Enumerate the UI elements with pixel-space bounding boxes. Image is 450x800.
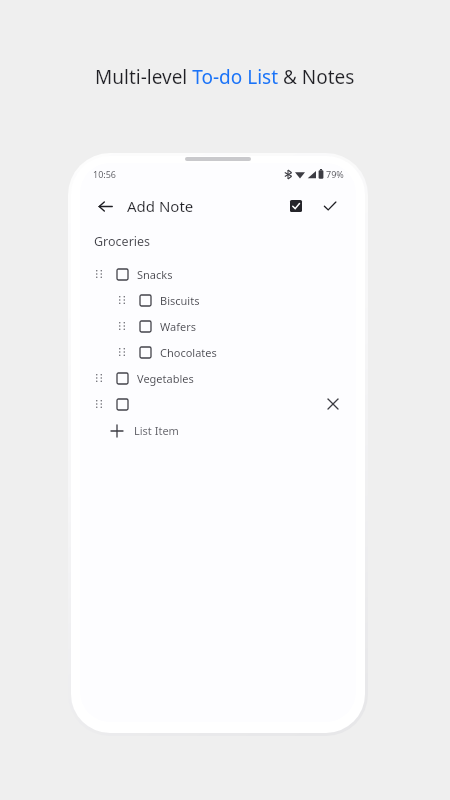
staticText: Wafers — [160, 319, 196, 334]
button[interactable]: Toggle checklist — [282, 192, 310, 220]
staticText: 10:56 — [93, 168, 117, 180]
button[interactable]: Remove item — [322, 393, 344, 415]
staticText: Chocolates — [160, 345, 217, 360]
staticText: Groceries — [94, 233, 151, 250]
button[interactable]: Reorder — [80, 313, 356, 339]
button[interactable]: Reorder — [92, 397, 106, 411]
staticText: Add Note — [127, 196, 194, 216]
button[interactable]: Reorder — [80, 339, 356, 365]
staticText: List Item — [134, 423, 179, 438]
button[interactable]: Check item — [137, 318, 154, 335]
button[interactable]: Check item — [114, 396, 131, 413]
button[interactable]: Reorder — [115, 345, 129, 359]
button[interactable]: Check item — [114, 370, 131, 387]
button[interactable]: Check item — [137, 292, 154, 309]
button[interactable]: Reorder — [80, 287, 356, 313]
button[interactable]: Check item — [114, 266, 131, 283]
button[interactable]: Reorder — [80, 391, 356, 417]
button[interactable]: Reorder — [92, 371, 106, 385]
staticText: Biscuits — [160, 293, 200, 308]
staticText: Multi-level To-do List & Notes — [95, 64, 355, 90]
button[interactable]: List Item — [80, 417, 356, 444]
button[interactable]: Reorder — [115, 293, 129, 307]
staticText: Snacks — [137, 267, 173, 282]
staticText: Vegetables — [137, 371, 194, 386]
button[interactable]: Reorder — [80, 261, 356, 287]
staticText: 79% — [326, 168, 344, 180]
button[interactable]: Reorder — [80, 365, 356, 391]
button[interactable]: Reorder — [115, 319, 129, 333]
button[interactable]: Save — [316, 192, 344, 220]
button[interactable]: Check item — [137, 344, 154, 361]
button[interactable]: Reorder — [92, 267, 106, 281]
button[interactable]: Back — [90, 191, 120, 221]
